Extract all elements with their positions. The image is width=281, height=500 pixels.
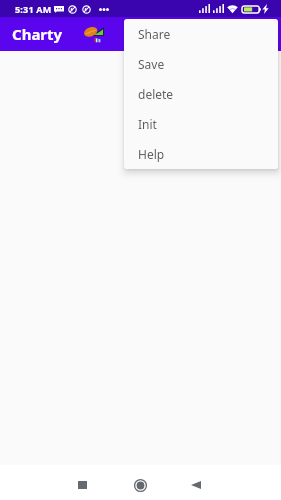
button[interactable]: Recent apps — [68, 471, 96, 499]
button[interactable]: Charty chart logo — [85, 25, 104, 43]
staticText: Help — [138, 146, 165, 162]
button[interactable]: Help — [124, 139, 278, 169]
staticText: Share — [138, 26, 171, 42]
staticText: 5:31 AM — [15, 3, 52, 15]
button[interactable]: delete — [124, 79, 278, 109]
button[interactable]: Share — [124, 19, 278, 49]
button[interactable]: Home — [126, 471, 154, 499]
staticText: delete — [138, 86, 174, 102]
staticText: Save — [138, 56, 165, 72]
staticText: Init — [138, 116, 157, 132]
button[interactable]: Back — [182, 471, 210, 499]
staticText: Charty — [12, 24, 63, 44]
button[interactable]: More options — [249, 18, 281, 50]
button[interactable]: Init — [124, 109, 278, 139]
button[interactable]: Save — [124, 49, 278, 79]
